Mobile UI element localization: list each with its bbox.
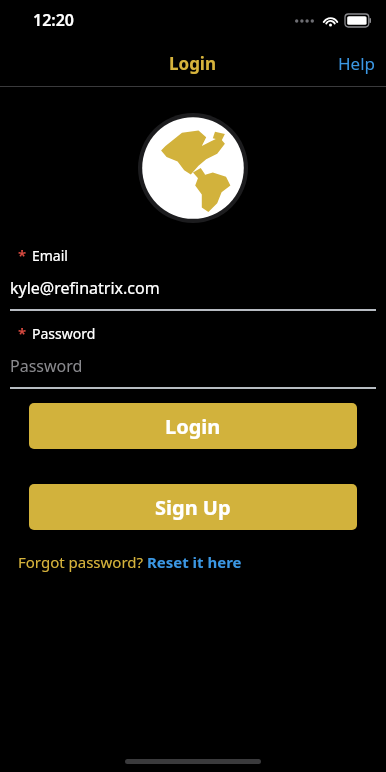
staticText: 12:20	[33, 9, 75, 31]
staticText: Login	[169, 52, 217, 75]
button[interactable]: Forgot password? Reset it here	[8, 548, 252, 576]
button[interactable]: Sign Up	[29, 484, 357, 530]
staticText: kyle@refinatrix.com	[10, 277, 160, 299]
other: App logo globe	[138, 113, 248, 223]
staticText: Forgot password? Reset it here	[18, 552, 242, 572]
staticText: *	[18, 245, 27, 265]
button[interactable]: Password	[0, 355, 386, 389]
staticText: Sign Up	[155, 494, 231, 521]
staticText: *	[18, 323, 27, 343]
staticText: Password	[10, 355, 83, 377]
button[interactable]: Help	[328, 46, 386, 81]
button[interactable]: Login	[29, 403, 357, 449]
button[interactable]: kyle@refinatrix.com	[0, 277, 386, 311]
staticText: Help	[338, 52, 376, 75]
staticText: Login	[165, 413, 221, 440]
staticText: Password	[32, 324, 96, 343]
staticText: Email	[32, 246, 68, 265]
